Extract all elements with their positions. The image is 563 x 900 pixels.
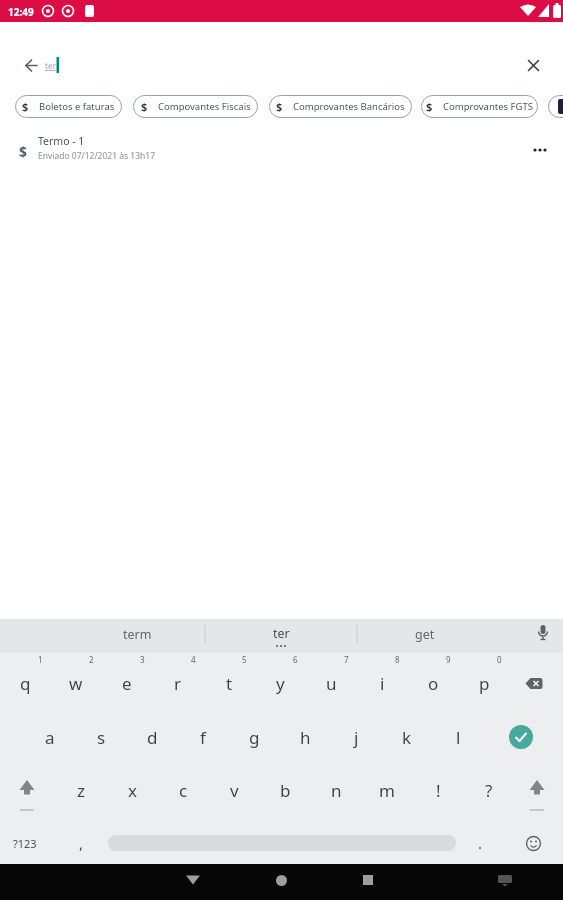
staticText: 1 (38, 654, 43, 665)
staticText: w (69, 672, 83, 695)
staticText: Comprovantes Bancários (293, 100, 405, 113)
staticText: t (226, 672, 233, 695)
staticText: x (128, 779, 137, 802)
staticText: 8 (395, 654, 400, 665)
staticText: n (331, 779, 342, 802)
button[interactable]: i (357, 657, 407, 709)
staticText: h (300, 726, 311, 749)
button[interactable]: t (204, 657, 254, 709)
staticText: m (379, 779, 395, 802)
staticText: l (456, 726, 461, 749)
staticText: $ (19, 142, 28, 161)
button[interactable]: c (158, 764, 208, 816)
button[interactable]: u (306, 657, 356, 709)
button[interactable]: v (209, 764, 259, 816)
button[interactable]: . (460, 818, 500, 868)
staticText: $ (22, 99, 29, 114)
staticText: . (478, 833, 483, 853)
staticText: Enviado 07/12/2021 às 13h17 (38, 150, 156, 162)
staticText: a (45, 726, 55, 749)
staticText: ! (436, 779, 441, 802)
button[interactable]: m (362, 764, 412, 816)
button[interactable]: b (260, 764, 310, 816)
staticText: $ (141, 99, 148, 114)
button[interactable]: j (331, 711, 381, 763)
button[interactable] (11, 45, 51, 85)
button[interactable]: l (433, 711, 483, 763)
button[interactable]: $ (15, 95, 122, 118)
button[interactable]: a (25, 711, 75, 763)
button[interactable]: , (61, 818, 101, 868)
staticText: ter (273, 625, 290, 642)
button[interactable]: s (76, 711, 126, 763)
staticText: k (402, 726, 412, 749)
staticText: ?123 (13, 836, 37, 851)
staticText: j (354, 726, 359, 749)
staticText: g (249, 726, 260, 749)
button[interactable] (344, 864, 392, 896)
staticText: o (428, 672, 439, 695)
button[interactable]: w (51, 657, 101, 709)
staticText: Termo - 1 (38, 134, 85, 148)
button[interactable] (169, 864, 217, 896)
staticText: ? (485, 779, 493, 802)
button[interactable] (513, 45, 553, 85)
button[interactable]: h (280, 711, 330, 763)
staticText: $ (426, 99, 433, 114)
staticText: f (200, 726, 206, 749)
staticText: p (479, 672, 490, 695)
staticText: 9 (446, 654, 451, 665)
staticText: v (230, 779, 239, 802)
button[interactable]: g (229, 711, 279, 763)
button[interactable] (485, 864, 525, 896)
staticText: $ (276, 99, 283, 114)
staticText: r (174, 672, 182, 695)
button[interactable] (499, 715, 543, 759)
button[interactable]: $ (421, 95, 538, 118)
button[interactable]: $ (133, 95, 258, 118)
staticText: , (79, 833, 84, 853)
staticText: get (415, 626, 435, 643)
button[interactable]: z (56, 764, 106, 816)
button[interactable]: k (382, 711, 432, 763)
button[interactable]: d (127, 711, 177, 763)
button[interactable] (257, 864, 305, 896)
button[interactable]: p (459, 657, 509, 709)
staticText: c (179, 779, 188, 802)
button[interactable]: e (102, 657, 152, 709)
staticText: d (147, 726, 158, 749)
staticText: b (280, 779, 291, 802)
staticText: s (97, 726, 106, 749)
button[interactable]: ?123 (0, 818, 50, 868)
staticText: q (20, 672, 31, 695)
staticText: 7 (344, 654, 349, 665)
button[interactable]: ! (413, 764, 463, 816)
staticText: Compovantes Fiscais (158, 100, 251, 113)
button[interactable] (509, 657, 559, 709)
button[interactable]: $ (269, 95, 412, 118)
staticText: y (276, 672, 285, 695)
staticText: 12:49 (8, 5, 34, 19)
button[interactable]: n (311, 764, 361, 816)
button[interactable]: r (153, 657, 203, 709)
button[interactable] (4, 769, 50, 821)
staticText: 2 (89, 654, 94, 665)
staticText: Comprovantes FGTS (443, 100, 533, 113)
staticText: Boletos e faturas (39, 100, 115, 113)
button[interactable]: x (107, 764, 157, 816)
button[interactable]: q (0, 657, 50, 709)
button[interactable] (514, 769, 560, 821)
button[interactable] (548, 95, 563, 118)
button[interactable]: o (408, 657, 458, 709)
button[interactable]: f (178, 711, 228, 763)
button[interactable] (511, 818, 555, 868)
staticText: z (77, 779, 85, 802)
staticText: 3 (140, 654, 145, 665)
button[interactable]: y (255, 657, 305, 709)
button[interactable]: $ (0, 128, 563, 172)
button[interactable]: ? (464, 764, 514, 816)
staticText: ter (45, 60, 56, 71)
staticText: u (326, 672, 337, 695)
staticText: 4 (191, 654, 196, 665)
